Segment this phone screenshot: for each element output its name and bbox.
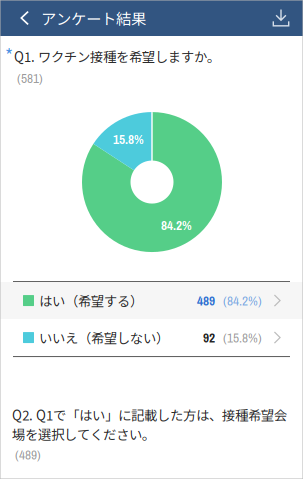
staticText: Q1. ワクチン接種を希望しますか。 (14, 47, 220, 66)
staticText: アンケート結果 (41, 7, 146, 29)
button[interactable]: はい（希望する） (0, 282, 303, 319)
staticText: (489) (15, 446, 41, 464)
button[interactable]: Download (260, 0, 303, 36)
staticText: (84.2%) (223, 292, 262, 310)
staticText: Q2. Q1で「はい」に記載した方は、接種希望会場を選択してください。 (12, 405, 287, 444)
staticText: 489 (197, 292, 215, 310)
staticText: (581) (17, 69, 43, 87)
staticText: 15.8% (113, 130, 144, 148)
staticText: 84.2% (161, 216, 192, 234)
button[interactable]: いいえ（希望しない） (0, 319, 303, 356)
staticText: いいえ（希望しない） (39, 328, 169, 347)
staticText: * (5, 42, 13, 67)
staticText: (15.8%) (223, 329, 262, 347)
staticText: 92 (203, 329, 215, 347)
button[interactable]: アンケート結果 (0, 0, 154, 36)
staticText: はい（希望する） (39, 291, 143, 310)
